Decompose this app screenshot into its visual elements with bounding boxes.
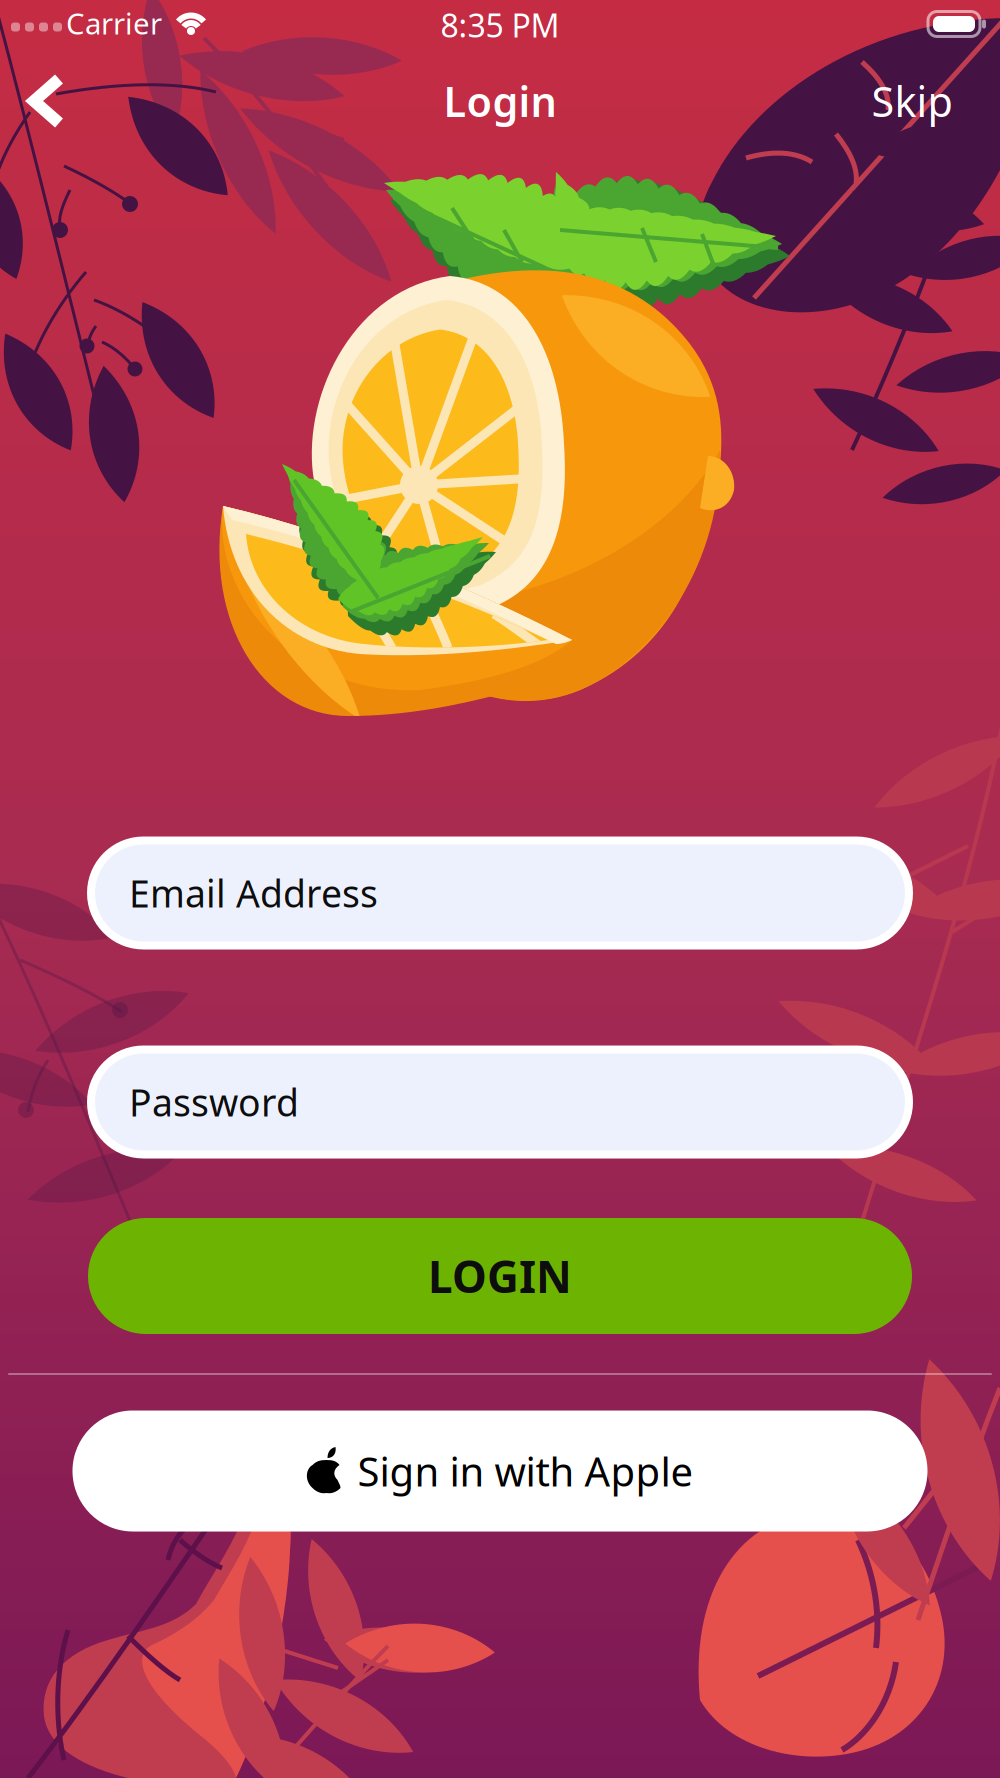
button[interactable]: LOGIN xyxy=(88,1218,912,1334)
button[interactable]: Password xyxy=(91,1049,909,1154)
button[interactable]: Back xyxy=(0,56,90,146)
staticText: Carrier xyxy=(66,3,162,42)
button[interactable]: Skip xyxy=(847,61,977,141)
button[interactable]: Email Address xyxy=(91,840,909,945)
staticText: Sign in with Apple xyxy=(357,1444,693,1497)
button[interactable]: Sign in with Apple xyxy=(72,1410,927,1531)
staticText: Skip xyxy=(871,74,952,128)
staticText: Email Address xyxy=(129,868,378,918)
staticText: LOGIN xyxy=(428,1247,572,1305)
staticText: Login xyxy=(443,74,556,128)
staticText: 8:35 PM xyxy=(440,4,559,46)
staticText: Password xyxy=(129,1077,299,1127)
